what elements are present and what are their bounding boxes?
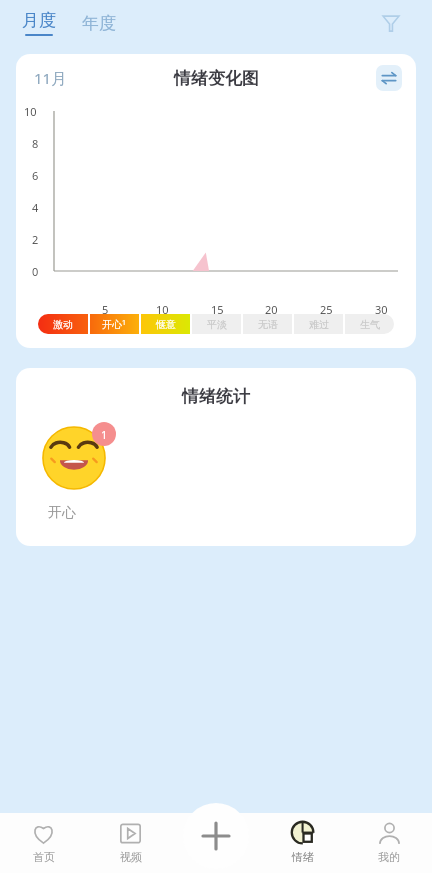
staticText: 情绪统计 [182, 386, 250, 407]
button[interactable]: 激动 [38, 314, 88, 334]
button[interactable]: 无语 [243, 314, 292, 334]
staticText: 15 [211, 302, 224, 317]
staticText: 无语 [258, 318, 278, 331]
staticText: 情绪 [292, 850, 314, 864]
staticText: 30 [375, 302, 388, 317]
staticText: 5 [102, 302, 109, 317]
staticText: 1 [101, 427, 108, 442]
staticText: 8 [32, 136, 39, 151]
button[interactable]: 视频 [87, 813, 174, 873]
button[interactable]: 平淡 [192, 314, 241, 334]
button[interactable]: 我的 [346, 813, 432, 873]
button[interactable]: Add [183, 803, 249, 869]
staticText: 平淡 [207, 318, 227, 331]
staticText: 25 [320, 302, 333, 317]
staticText: 0 [32, 264, 39, 279]
staticText: 生气 [360, 318, 380, 331]
staticText: 我的 [378, 850, 400, 864]
button[interactable]: 难过 [294, 314, 343, 334]
staticText: 10 [156, 302, 169, 317]
staticText: 月度 [22, 10, 56, 31]
button[interactable]: 首页 [0, 813, 87, 873]
button[interactable]: 月度 [20, 10, 58, 36]
button[interactable]: 年度 [80, 11, 118, 36]
staticText: 视频 [120, 850, 142, 864]
button[interactable]: 情绪 [260, 813, 346, 873]
button[interactable]: Filter [376, 8, 406, 38]
staticText: 难过 [309, 318, 329, 331]
staticText: 年度 [82, 13, 116, 34]
staticText: 4 [32, 200, 39, 215]
staticText: 首页 [33, 850, 55, 864]
staticText: 激动 [53, 318, 73, 331]
button[interactable]: 开心 [90, 314, 139, 334]
staticText: 情绪变化图 [174, 68, 259, 89]
button[interactable]: 1 [42, 422, 116, 522]
staticText: 惬意 [156, 318, 176, 331]
button[interactable]: 生气 [345, 314, 394, 334]
button[interactable]: Switch chart [376, 65, 402, 91]
staticText: 20 [265, 302, 278, 317]
staticText: 2 [32, 232, 39, 247]
staticText: 开心 [102, 318, 122, 331]
staticText: 10 [24, 104, 37, 119]
staticText: 开心 [48, 504, 76, 522]
button[interactable]: 惬意 [141, 314, 190, 334]
staticText: 1 [122, 318, 127, 328]
staticText: 6 [32, 168, 39, 183]
staticText: 11月 [34, 68, 67, 88]
